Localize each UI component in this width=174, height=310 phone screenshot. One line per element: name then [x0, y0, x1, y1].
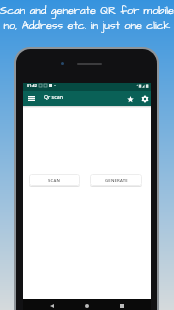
button[interactable]: History — [139, 93, 151, 105]
staticText: GENERATE — [105, 177, 128, 183]
button[interactable]: SCAN — [29, 174, 80, 186]
staticText: Scan and generate QR for mobile no, Addr… — [0, 3, 174, 34]
staticText: 01:42 — [27, 83, 37, 88]
button[interactable]: Menu — [25, 92, 38, 105]
button[interactable]: Home — [81, 300, 93, 310]
button[interactable]: GENERATE — [90, 174, 142, 186]
button[interactable]: Back — [46, 300, 58, 310]
button[interactable]: Favorites — [124, 93, 136, 105]
button[interactable]: Recents — [116, 300, 128, 310]
staticText: SCAN — [48, 177, 61, 183]
staticText: Qr scan — [44, 93, 63, 100]
